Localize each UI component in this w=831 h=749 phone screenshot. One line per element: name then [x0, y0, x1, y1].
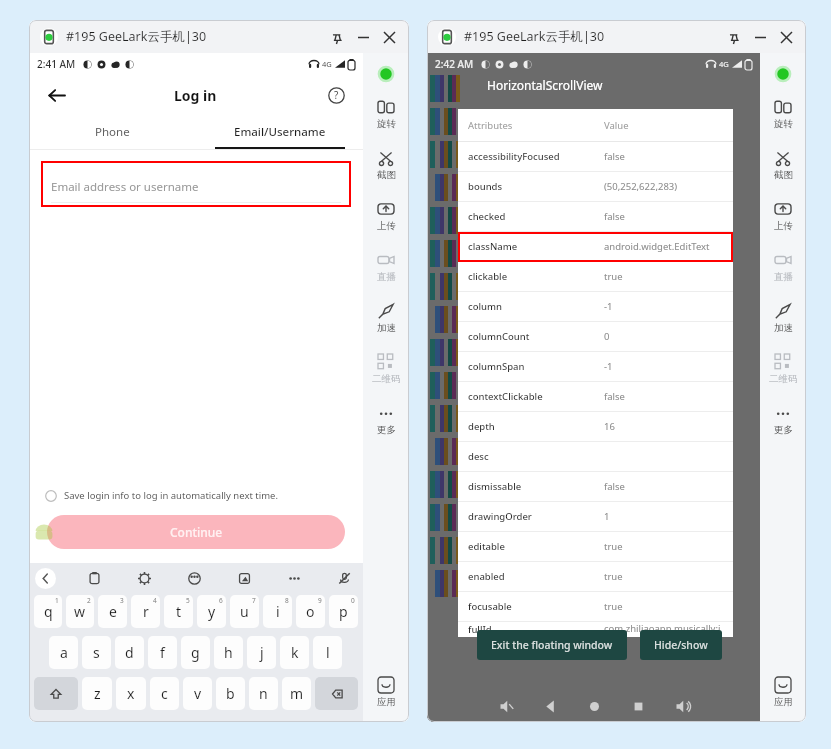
staticText: bounds: [468, 180, 604, 193]
button[interactable]: 二维码: [760, 354, 806, 385]
button[interactable]: className: [468, 232, 723, 261]
button[interactable]: dismissable: [468, 472, 723, 501]
staticText: -1: [604, 360, 613, 373]
button[interactable]: k: [280, 636, 309, 669]
button[interactable]: 截图: [363, 150, 409, 181]
button[interactable]: columnSpan: [468, 352, 723, 381]
button[interactable]: depth: [468, 412, 723, 441]
button[interactable]: n: [249, 677, 278, 710]
button[interactable]: y: [197, 595, 226, 628]
button[interactable]: desc: [468, 442, 723, 471]
button[interactable]: 更多: [760, 405, 806, 436]
button[interactable]: z: [82, 677, 112, 710]
button[interactable]: accessibilityFocused: [468, 142, 723, 171]
button[interactable]: u: [230, 595, 259, 628]
button[interactable]: clickable: [468, 262, 723, 291]
button[interactable]: 上传: [363, 201, 409, 232]
button[interactable]: v: [183, 677, 212, 710]
button[interactable]: editable: [468, 532, 723, 561]
button[interactable]: Backspace: [315, 677, 358, 710]
button[interactable]: drawingOrder: [468, 502, 723, 531]
button[interactable]: checked: [468, 202, 723, 231]
button[interactable]: w: [66, 595, 94, 628]
button[interactable]: Email address or username: [41, 161, 351, 207]
button[interactable]: Close: [773, 24, 799, 50]
button[interactable]: f: [148, 636, 177, 669]
button[interactable]: 直播: [363, 252, 409, 283]
button[interactable]: g: [181, 636, 210, 669]
button[interactable]: c: [150, 677, 179, 710]
button[interactable]: 加速: [760, 303, 806, 334]
button[interactable]: Back: [43, 82, 69, 108]
button[interactable]: Minimize: [747, 24, 773, 50]
button[interactable]: 上传: [760, 201, 806, 232]
button[interactable]: Close: [376, 24, 402, 50]
button[interactable]: 更多: [363, 405, 409, 436]
button[interactable]: t: [164, 595, 193, 628]
button[interactable]: Continue: [47, 515, 345, 549]
button[interactable]: Recents: [616, 690, 660, 722]
button[interactable]: l: [313, 636, 342, 669]
button[interactable]: 旋转: [760, 99, 806, 130]
button[interactable]: bounds: [468, 172, 723, 201]
button[interactable]: Keyboard tool 6: [333, 567, 355, 589]
button[interactable]: 直播: [760, 252, 806, 283]
button[interactable]: Phone: [29, 115, 196, 149]
button[interactable]: Keyboard tool 5: [283, 567, 305, 589]
button[interactable]: x: [116, 677, 146, 710]
button[interactable]: Exit the floating window: [491, 630, 613, 660]
staticText: Email/Username: [234, 124, 326, 140]
staticText: a: [60, 643, 68, 662]
button[interactable]: o: [296, 595, 325, 628]
button[interactable]: a: [49, 636, 78, 669]
button[interactable]: 应用: [363, 677, 409, 708]
button[interactable]: column: [468, 292, 723, 321]
button[interactable]: Back: [35, 568, 56, 589]
staticText: -1: [604, 300, 613, 313]
button[interactable]: e: [98, 595, 127, 628]
staticText: 更多: [377, 424, 396, 436]
button[interactable]: r: [131, 595, 160, 628]
button[interactable]: Pin window: [324, 24, 350, 50]
button[interactable]: 截图: [760, 150, 806, 181]
button[interactable]: 旋转: [363, 99, 409, 130]
button[interactable]: d: [115, 636, 144, 669]
staticText: 上传: [377, 220, 396, 232]
button[interactable]: Volume down: [484, 690, 528, 722]
button[interactable]: s: [82, 636, 111, 669]
button[interactable]: Home: [572, 690, 616, 722]
button[interactable]: h: [214, 636, 243, 669]
staticText: u: [240, 602, 249, 621]
button[interactable]: Minimize: [350, 24, 376, 50]
button[interactable]: 应用: [760, 677, 806, 708]
button[interactable]: j: [247, 636, 276, 669]
staticText: 直播: [774, 271, 793, 283]
button[interactable]: Save login info to log in automatically …: [45, 489, 347, 502]
button[interactable]: p: [329, 595, 358, 628]
button[interactable]: Keyboard tool 4: [233, 567, 255, 589]
button[interactable]: Keyboard tool 1: [83, 567, 105, 589]
button[interactable]: i: [263, 595, 292, 628]
button[interactable]: fullId: [468, 622, 723, 637]
button[interactable]: Back: [528, 690, 572, 722]
button[interactable]: Email/Username: [196, 115, 363, 149]
button[interactable]: q: [34, 595, 62, 628]
button[interactable]: columnCount: [468, 322, 723, 351]
button[interactable]: Hide/show: [654, 630, 708, 660]
button[interactable]: enabled: [468, 562, 723, 591]
button[interactable]: Shift: [34, 677, 78, 710]
button[interactable]: contextClickable: [468, 382, 723, 411]
staticText: accessibilityFocused: [468, 150, 604, 163]
button[interactable]: Pin window: [721, 24, 747, 50]
button[interactable]: Keyboard tool 2: [133, 567, 155, 589]
button[interactable]: b: [216, 677, 245, 710]
button[interactable]: 加速: [363, 303, 409, 334]
staticText: checked: [468, 210, 604, 223]
button[interactable]: Keyboard tool 3: [183, 567, 205, 589]
button[interactable]: m: [282, 677, 311, 710]
button[interactable]: focusable: [468, 592, 723, 621]
button[interactable]: Help: [323, 82, 349, 108]
button[interactable]: 二维码: [363, 354, 409, 385]
button[interactable]: Volume up: [660, 690, 704, 722]
staticText: 旋转: [774, 118, 793, 130]
